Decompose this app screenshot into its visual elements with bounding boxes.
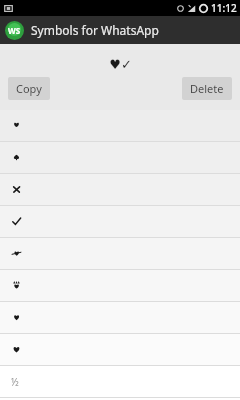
staticText: 11:12 — [211, 1, 237, 15]
staticText: Symbols for WhatsApp — [31, 22, 159, 38]
button[interactable]: Symbol 1 — [0, 110, 240, 142]
staticText: ♥✓ — [109, 57, 132, 72]
staticText: Copy — [16, 81, 42, 96]
button[interactable]: Symbol 7 — [0, 302, 240, 334]
staticText: Delete — [190, 81, 224, 96]
button[interactable]: Symbol 2 — [0, 142, 240, 174]
staticText: WS — [8, 25, 21, 36]
button[interactable]: Symbol 9 — [0, 366, 240, 398]
button[interactable]: Symbol 5 — [0, 238, 240, 270]
button[interactable]: Symbol 8 — [0, 334, 240, 366]
button[interactable]: Symbol 4 — [0, 206, 240, 238]
staticText: ½ — [11, 375, 19, 389]
button[interactable]: Copy — [8, 77, 50, 100]
button[interactable]: Delete — [182, 77, 232, 100]
button[interactable]: Symbol 6 — [0, 270, 240, 302]
button[interactable]: Symbol 3 — [0, 174, 240, 206]
